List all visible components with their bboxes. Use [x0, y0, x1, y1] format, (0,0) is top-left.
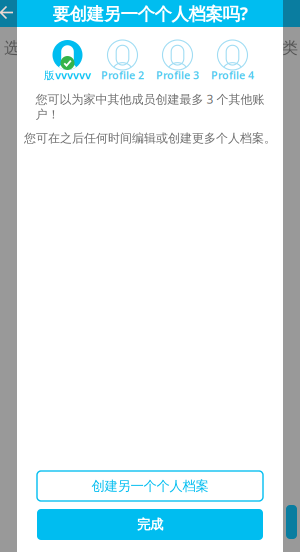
- button[interactable]: 创建另一个个人档案: [37, 471, 263, 501]
- button[interactable]: 版vvvvvv: [40, 40, 95, 82]
- staticText: Profile 4: [211, 68, 254, 82]
- staticText: 类: [282, 38, 298, 58]
- staticText: 您可以为家中其他成员创建最多 3 个其他账户！: [35, 91, 264, 122]
- staticText: 选: [4, 38, 20, 58]
- button[interactable]: Profile 4: [205, 40, 260, 82]
- button[interactable]: Profile 3: [150, 40, 205, 82]
- staticText: 版vvvvvv: [44, 68, 91, 82]
- button[interactable]: Profile 2: [95, 40, 150, 82]
- staticText: Profile 3: [156, 68, 199, 82]
- button[interactable]: 完成: [37, 509, 263, 540]
- staticText: 完成: [137, 516, 163, 533]
- button[interactable]: Back: [0, 0, 18, 25]
- staticText: 您可在之后任何时间编辑或创建更多个人档案。: [24, 131, 276, 145]
- staticText: 要创建另一个个人档案吗?: [52, 2, 247, 25]
- staticText: Profile 2: [101, 68, 144, 82]
- staticText: 创建另一个个人档案: [91, 478, 208, 494]
